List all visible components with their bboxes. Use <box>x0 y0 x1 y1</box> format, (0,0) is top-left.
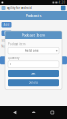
staticText: Quantity <box>8 56 19 60</box>
staticText: agility for android <box>7 6 32 10</box>
button[interactable]: Save <box>8 70 59 77</box>
button[interactable]: Menu <box>61 6 65 10</box>
staticText: Podcast Item <box>21 32 45 38</box>
staticText: Add <box>3 23 9 26</box>
button[interactable]: Next <box>58 56 67 64</box>
button[interactable]: Home <box>30 109 38 116</box>
staticText: Podcast item <box>8 42 25 46</box>
staticText: 1 <box>9 62 11 66</box>
button[interactable]: Recents <box>49 109 56 116</box>
button[interactable]: Back <box>11 109 18 116</box>
staticText: Title <box>1 39 7 42</box>
button[interactable]: Previous <box>0 56 9 64</box>
staticText: 4:20 <box>58 1 65 4</box>
button[interactable]: Edit <box>1 30 11 36</box>
staticText: Save <box>31 72 36 75</box>
staticText: Podcasts <box>25 13 41 18</box>
button[interactable]: Delete <box>8 79 59 86</box>
staticText: Field one <box>25 49 39 52</box>
staticText: Delete <box>28 81 38 84</box>
button[interactable]: Add <box>1 22 11 27</box>
staticText: Edit <box>4 31 9 35</box>
staticText: Note <box>1 45 8 48</box>
